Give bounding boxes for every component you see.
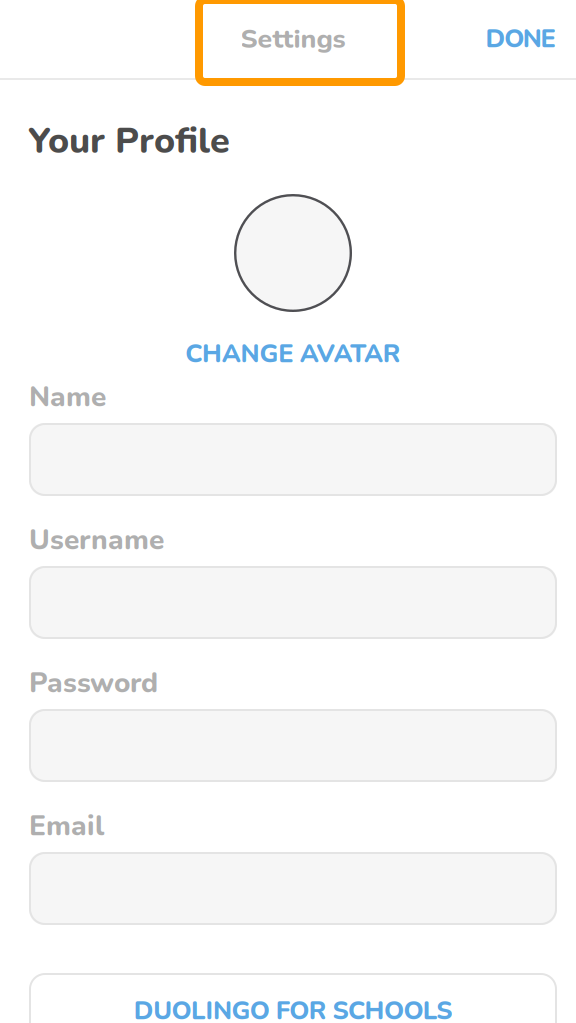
staticText: Email	[29, 807, 104, 845]
staticText: Username	[29, 521, 164, 559]
button[interactable]: DUOLINGO FOR SCHOOLS	[29, 973, 557, 1023]
button[interactable]: Profile avatar	[234, 194, 352, 312]
button[interactable]: DONE	[465, 0, 576, 78]
button[interactable]: Name	[29, 423, 557, 496]
button[interactable]: Password	[29, 709, 557, 782]
staticText: Settings	[240, 21, 345, 57]
button[interactable]: Username	[29, 566, 557, 639]
staticText: CHANGE AVATAR	[185, 337, 401, 371]
staticText: DUOLINGO FOR SCHOOLS	[134, 994, 452, 1023]
button[interactable]: Email	[29, 852, 557, 925]
staticText: Password	[29, 664, 158, 702]
staticText: Your Profile	[28, 116, 230, 165]
button[interactable]: Settings	[181, 0, 405, 78]
button[interactable]: CHANGE AVATAR	[185, 312, 401, 371]
staticText: Name	[29, 378, 106, 416]
staticText: DONE	[486, 22, 555, 56]
